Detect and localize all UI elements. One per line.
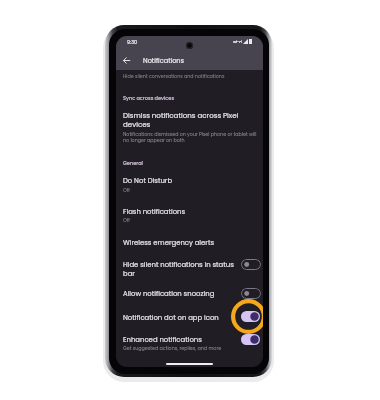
staticText: Notifications xyxy=(143,56,203,65)
staticText: Notifications dismissed on your Pixel ph… xyxy=(123,131,263,138)
staticText: Enhanced notifications xyxy=(123,335,238,345)
staticText: Allow notification snoozing xyxy=(123,289,238,299)
staticText: bar xyxy=(123,269,238,279)
staticText: Dismiss notifications across Pixel xyxy=(123,111,253,121)
button[interactable]: Back xyxy=(119,53,133,67)
staticText: devices xyxy=(123,120,253,130)
staticText: 9:30 xyxy=(127,39,147,46)
staticText: Get suggested actions, replies, and more xyxy=(123,345,238,352)
staticText: Hide silent conversations and notificati… xyxy=(123,73,263,80)
button[interactable]: Toggle off xyxy=(241,288,261,299)
staticText: Hide silent notifications in status xyxy=(123,260,238,270)
staticText: Off xyxy=(123,187,243,194)
button[interactable]: Toggle on xyxy=(241,334,260,345)
button[interactable]: Toggle off xyxy=(241,259,261,270)
staticText: Off xyxy=(123,217,243,224)
staticText: Wireless emergency alerts xyxy=(123,238,253,248)
staticText: Notification dot on app icon xyxy=(123,313,238,323)
button[interactable]: Toggle on xyxy=(241,311,260,322)
staticText: Flash notifications xyxy=(123,207,243,217)
staticText: General xyxy=(123,160,263,167)
staticText: Do Not Disturb xyxy=(123,176,243,186)
staticText: Sync across devices xyxy=(123,95,263,102)
staticText: no longer appear on both xyxy=(123,137,263,144)
staticText: Wi-Fi xyxy=(233,40,242,44)
